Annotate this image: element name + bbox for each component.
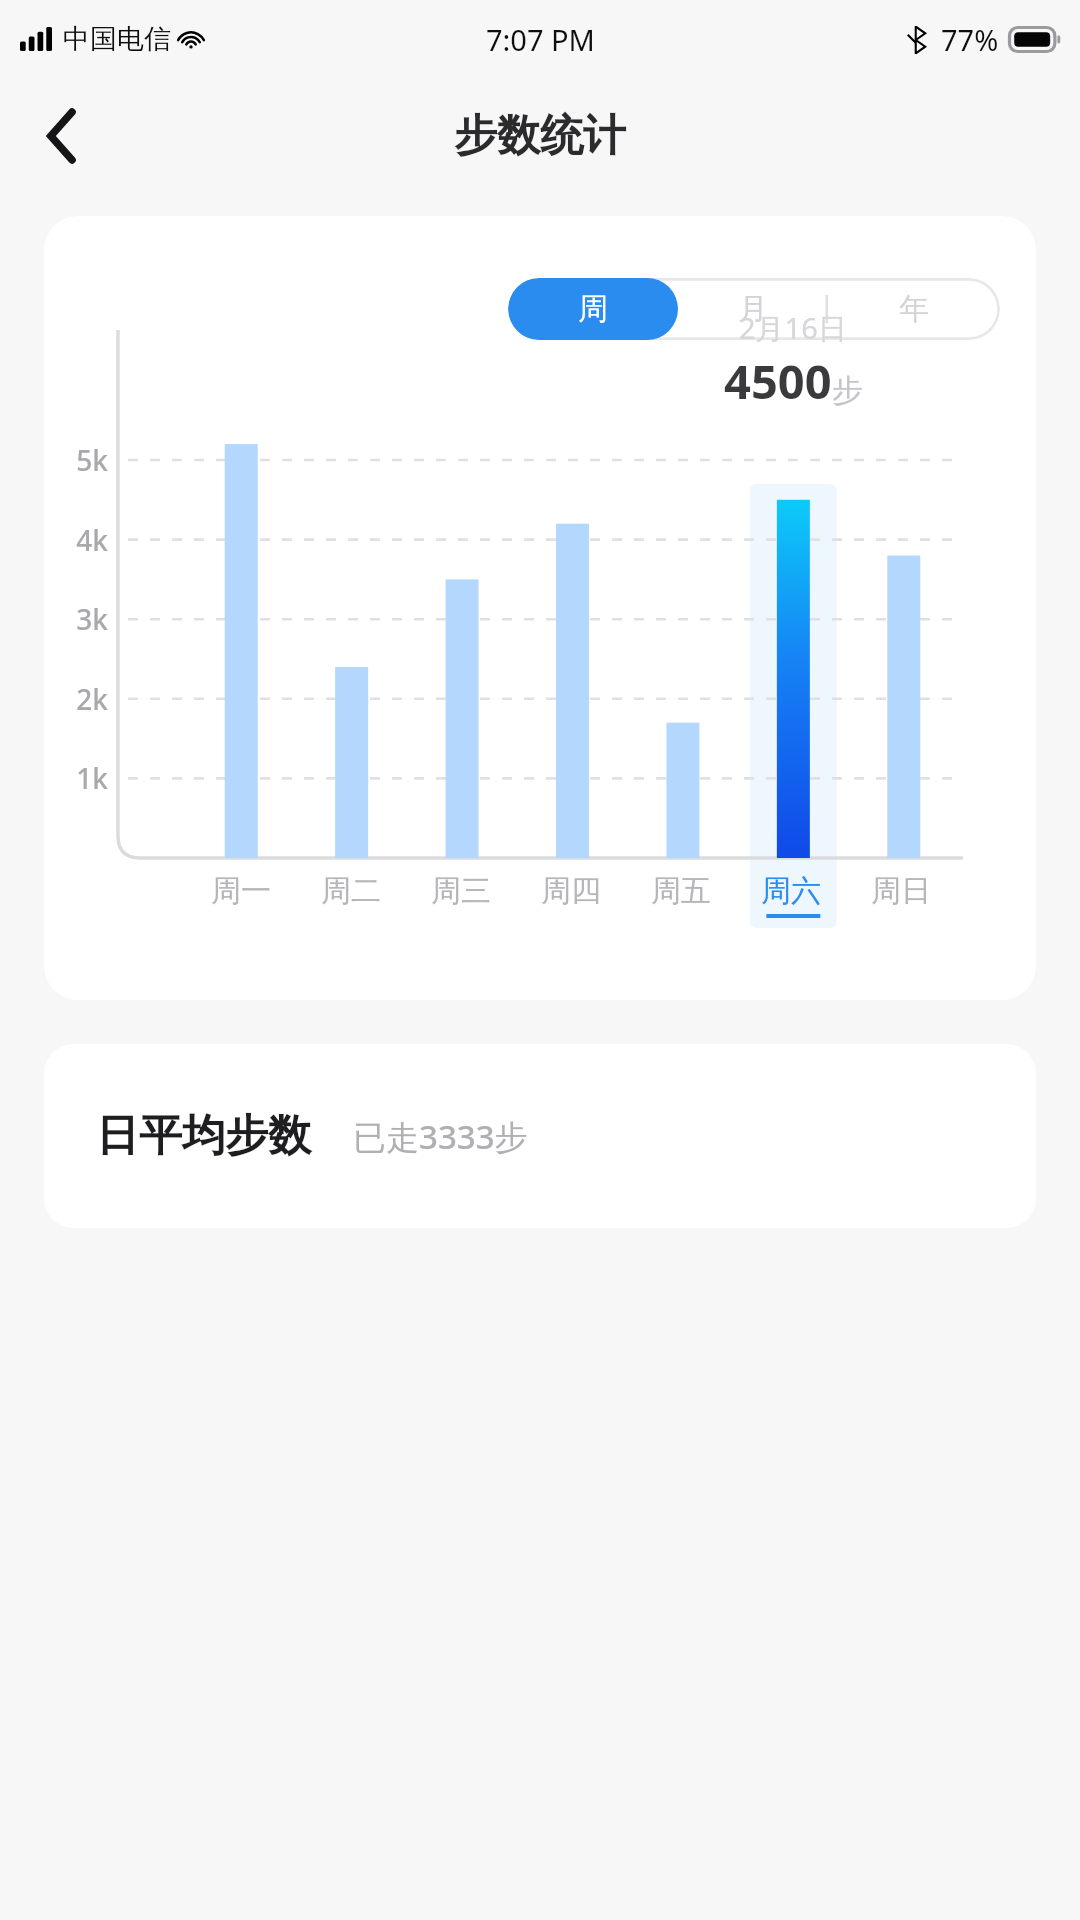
- staticText: 77%: [941, 20, 999, 59]
- button[interactable]: 周六: [736, 868, 846, 914]
- button[interactable]: 周二: [296, 868, 406, 914]
- staticText: 周六: [761, 872, 821, 910]
- staticText: 中国电信: [63, 22, 171, 56]
- staticText: 周四: [541, 872, 601, 910]
- button[interactable]: 周五: [626, 868, 736, 914]
- button[interactable]: Back: [22, 96, 102, 176]
- staticText: 周日: [871, 872, 931, 910]
- staticText: 年: [899, 290, 929, 328]
- staticText: 步数统计: [454, 109, 626, 163]
- staticText: 周二: [321, 872, 381, 910]
- staticText: 5k: [74, 441, 108, 479]
- button[interactable]: 日平均步数: [44, 1044, 1036, 1228]
- staticText: 7:07 PM: [486, 20, 595, 59]
- button[interactable]: 周日: [846, 868, 956, 914]
- staticText: 周五: [651, 872, 711, 910]
- button[interactable]: 周一: [186, 868, 296, 914]
- staticText: 日平均步数: [96, 1109, 311, 1163]
- staticText: 2k: [74, 680, 108, 718]
- button[interactable]: 周: [508, 278, 678, 340]
- staticText: 2月16日: [739, 308, 847, 348]
- staticText: 已走3333步: [353, 1114, 528, 1159]
- staticText: 月: [738, 290, 768, 328]
- staticText: 步: [832, 371, 863, 410]
- staticText: 4k: [74, 521, 108, 559]
- staticText: 3k: [74, 600, 108, 638]
- button[interactable]: 周四: [516, 868, 626, 914]
- staticText: 周一: [211, 872, 271, 910]
- staticText: 4500: [724, 349, 832, 413]
- staticText: 周三: [431, 872, 491, 910]
- button[interactable]: 月: [678, 278, 827, 340]
- staticText: 1k: [74, 759, 108, 797]
- button[interactable]: 周三: [406, 868, 516, 914]
- staticText: 周: [578, 290, 608, 328]
- button[interactable]: 年: [827, 278, 1000, 340]
